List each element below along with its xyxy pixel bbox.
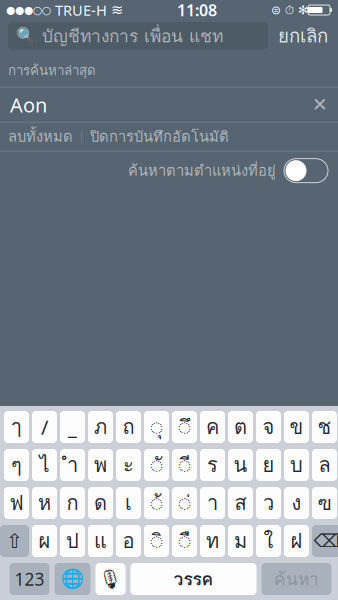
button[interactable]: ยกเลิก (276, 22, 330, 50)
staticText: / (41, 414, 48, 440)
button[interactable]: Delete (312, 525, 338, 557)
button[interactable]: ช (312, 411, 337, 443)
button[interactable]: ม (228, 525, 253, 557)
staticText: ท (206, 525, 219, 556)
staticText: ะ (123, 449, 134, 480)
button[interactable]: จ (256, 411, 281, 443)
staticText: ปิดการบันทึกอัตโนมัติ (90, 125, 229, 148)
button[interactable]: ุ (144, 411, 169, 443)
staticText: ร (207, 449, 218, 480)
button[interactable]: ล (312, 449, 337, 481)
button[interactable]: 123 (9, 563, 49, 595)
staticText: ค้นหา (274, 566, 319, 592)
button[interactable]: บ (284, 449, 309, 481)
staticText: ื (178, 525, 190, 556)
button[interactable]: ฟ (4, 487, 29, 519)
button[interactable]: ึ (172, 411, 197, 443)
button[interactable]: ะ (116, 449, 141, 481)
button[interactable]: แ (88, 525, 113, 557)
staticText: ผ (38, 525, 50, 556)
button[interactable]: ๅ (4, 411, 29, 443)
button[interactable]: Dictation (95, 563, 125, 595)
button[interactable]: Aon (0, 88, 338, 122)
staticText: ๆ (11, 449, 22, 480)
button[interactable]: ร (200, 449, 225, 481)
staticText: ต (234, 411, 247, 442)
button[interactable]: Search by location (284, 159, 328, 183)
staticText: ≋ (111, 2, 123, 18)
button[interactable]: ห (32, 487, 57, 519)
staticText: ฝ (290, 525, 302, 556)
staticText: ห (38, 487, 51, 518)
button[interactable]: ย (256, 449, 281, 481)
button[interactable]: ผ (32, 525, 57, 557)
staticText: ใ (263, 525, 273, 556)
staticText: บ (290, 449, 303, 480)
button[interactable]: ว (256, 487, 281, 519)
button[interactable]: ื (172, 525, 197, 557)
staticText: ว (263, 487, 274, 518)
button[interactable]: พ (88, 449, 113, 481)
button[interactable]: ส (228, 487, 253, 519)
button[interactable]: ลบทั้งหมด (0, 123, 81, 151)
staticText: _ (68, 414, 77, 440)
button[interactable]: ไ (32, 449, 57, 481)
button[interactable]: เ (116, 487, 141, 519)
staticText: พ (94, 449, 107, 480)
button[interactable]: ภ (88, 411, 113, 443)
staticText: ●●●○○ (6, 4, 51, 16)
button[interactable]: ิ (144, 525, 169, 557)
staticText: จ (262, 411, 274, 442)
button[interactable]: ท (200, 525, 225, 557)
button[interactable]: ป (60, 525, 85, 557)
staticText: ลบทั้งหมด (8, 125, 73, 148)
button[interactable]: ค (200, 411, 225, 443)
button[interactable]: ่ (172, 487, 197, 519)
staticText: ี (178, 449, 190, 480)
button[interactable]: ี (172, 449, 197, 481)
button[interactable]: ข (284, 411, 309, 443)
staticText: ⌫ (313, 530, 338, 552)
staticText: การค้นหาล่าสุด (8, 60, 96, 81)
staticText: ถ (122, 411, 134, 442)
button[interactable]: 🔍 (8, 22, 268, 50)
staticText: TRUE-H (51, 0, 111, 20)
staticText: ⊜ ⏱ ✻ (271, 3, 308, 17)
button[interactable]: ำ (60, 449, 85, 481)
button[interactable]: Next keyboard (54, 563, 90, 595)
button[interactable]: น (228, 449, 253, 481)
button[interactable]: ฃ (312, 487, 337, 519)
button[interactable]: ค้นหา (261, 563, 331, 595)
staticText: ✕ (312, 94, 328, 115)
staticText: ม (234, 525, 247, 556)
button[interactable]: _ (60, 411, 85, 443)
staticText: ค (206, 411, 219, 442)
staticText: ภ (94, 411, 107, 442)
staticText: อ (122, 525, 134, 556)
button[interactable]: ต (228, 411, 253, 443)
button[interactable]: ั (144, 449, 169, 481)
staticText: วรรค (173, 566, 213, 592)
button[interactable]: ง (284, 487, 309, 519)
button[interactable]: ถ (116, 411, 141, 443)
button[interactable]: า (200, 487, 225, 519)
button[interactable]: ๆ (4, 449, 29, 481)
staticText: 11:08 (177, 0, 217, 21)
staticText: ฃ (317, 487, 331, 518)
staticText: บัญชีทางการ เพื่อน แชท (42, 23, 223, 49)
button[interactable]: ปิดการบันทึกอัตโนมัติ (82, 123, 237, 151)
staticText: ั (150, 449, 162, 480)
button[interactable]: / (32, 411, 57, 443)
staticText: า (207, 487, 218, 518)
button[interactable]: วรรค (130, 563, 256, 595)
staticText: ⇧ (6, 530, 23, 552)
button[interactable]: Shift (0, 525, 29, 557)
staticText: ก (66, 487, 78, 518)
staticText: 🌐 (61, 568, 84, 590)
button[interactable]: ฝ (284, 525, 309, 557)
button[interactable]: ด (88, 487, 113, 519)
button[interactable]: ใ (256, 525, 281, 557)
button[interactable]: ้ (144, 487, 169, 519)
button[interactable]: อ (116, 525, 141, 557)
button[interactable]: ก (60, 487, 85, 519)
